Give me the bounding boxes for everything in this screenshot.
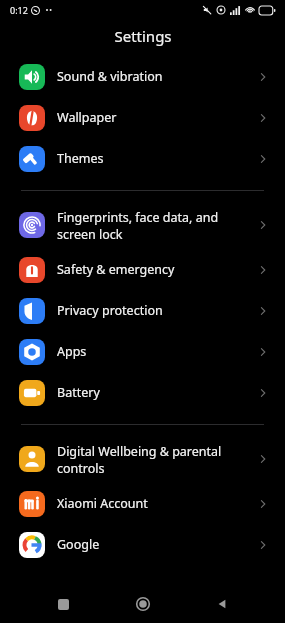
staticText: Sound & vibration — [57, 68, 250, 85]
staticText: Xiaomi Account — [57, 495, 250, 512]
staticText: Themes — [57, 150, 250, 167]
staticText: Wallpaper — [57, 109, 250, 126]
staticText: Google — [57, 536, 250, 553]
button[interactable]: Apps — [0, 331, 285, 372]
button[interactable]: Privacy protection — [0, 290, 285, 331]
staticText: Battery — [57, 384, 250, 401]
staticText: Privacy protection — [57, 302, 250, 319]
button[interactable]: Safety & emergency — [0, 249, 285, 290]
staticText: 0:12 — [10, 4, 28, 16]
button[interactable]: Sound & vibration — [0, 56, 285, 97]
button[interactable]: Back — [205, 587, 239, 621]
button[interactable]: Google — [0, 524, 285, 565]
staticText: Safety & emergency — [57, 261, 250, 278]
button[interactable]: Wallpaper — [0, 97, 285, 138]
button[interactable]: Xiaomi Account — [0, 483, 285, 524]
button[interactable]: Fingerprints, face data, and screen lock — [0, 201, 285, 249]
staticText: Settings — [114, 26, 172, 46]
staticText: Apps — [57, 343, 250, 360]
button[interactable]: Home — [126, 587, 160, 621]
button[interactable]: Battery — [0, 372, 285, 413]
staticText: Fingerprints, face data, and screen lock — [57, 209, 250, 242]
button[interactable]: Digital Wellbeing & parental controls — [0, 435, 285, 483]
button[interactable]: Themes — [0, 138, 285, 179]
button[interactable]: Recents — [46, 587, 80, 621]
staticText: Digital Wellbeing & parental controls — [57, 443, 250, 476]
